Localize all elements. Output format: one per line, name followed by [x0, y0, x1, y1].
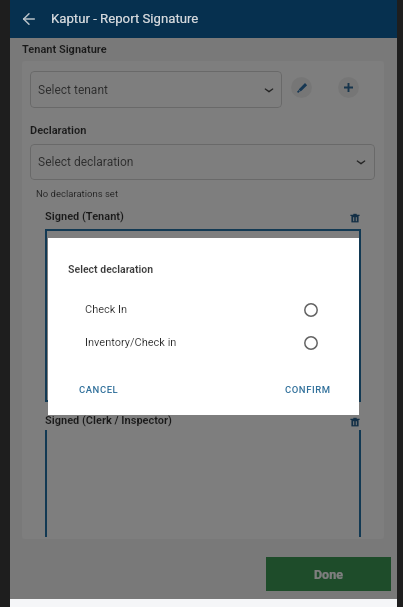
button[interactable]: Done: [266, 557, 391, 591]
staticText: Select declaration: [68, 263, 154, 275]
button[interactable]: Select declaration: [30, 144, 375, 180]
staticText: Tenant Signature: [22, 43, 107, 56]
staticText: Select tenant: [38, 83, 108, 97]
button[interactable]: Add tenant: [338, 77, 359, 98]
staticText: Declaration: [30, 124, 87, 137]
staticText: Signed (Clerk / Inspector): [45, 414, 172, 427]
button[interactable]: Inventory/Check in: [48, 326, 359, 359]
staticText: Inventory/Check in: [85, 336, 177, 349]
button[interactable]: Select tenant: [30, 71, 282, 108]
staticText: Select declaration: [38, 155, 134, 169]
staticText: Signed (Tenant): [45, 210, 124, 223]
button[interactable]: Clear tenant signature: [346, 209, 363, 226]
button[interactable]: Clear clerk signature: [346, 413, 363, 430]
button[interactable]: CONFIRM: [277, 378, 339, 401]
staticText: Done: [314, 567, 343, 582]
button[interactable]: CANCEL: [71, 378, 127, 401]
staticText: Check In: [85, 303, 128, 316]
button[interactable]: Check In: [48, 293, 359, 326]
button[interactable]: Edit tenant: [291, 77, 312, 98]
button[interactable]: Back: [10, 0, 48, 38]
staticText: Kaptur - Report Signature: [51, 11, 199, 26]
staticText: No declarations set: [36, 188, 118, 199]
